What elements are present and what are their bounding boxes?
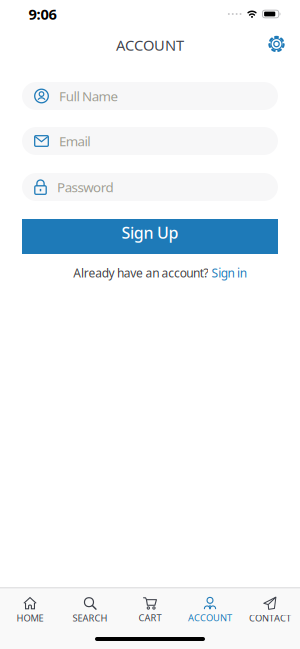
staticText: Sign Up [121, 222, 179, 243]
button[interactable]: SEARCH [60, 595, 120, 624]
staticText: Already have an account? [73, 265, 208, 281]
staticText: Email [59, 132, 90, 150]
button[interactable]: Settings [259, 29, 293, 61]
staticText: Sign in [211, 265, 247, 281]
staticText: HOME [16, 612, 43, 624]
button[interactable]: ACCOUNT [180, 595, 240, 624]
button[interactable]: CONTACT [240, 595, 300, 624]
staticText: CART [138, 611, 161, 624]
textField[interactable]: Email [59, 132, 266, 150]
staticText: SEARCH [72, 612, 107, 624]
staticText: ACCOUNT [188, 611, 232, 624]
button[interactable]: CART [120, 595, 180, 624]
secureTextField[interactable]: Password [57, 178, 266, 196]
button[interactable]: Sign in [211, 265, 247, 281]
staticText: Full Name [59, 87, 118, 105]
staticText: ACCOUNT [116, 35, 184, 55]
staticText: CONTACT [249, 612, 291, 624]
button[interactable]: HOME [0, 595, 60, 624]
button[interactable]: Sign Up [22, 219, 278, 254]
staticText: 9:06 [28, 4, 56, 24]
staticText: Password [57, 178, 114, 196]
textField[interactable]: Full Name [59, 87, 266, 105]
